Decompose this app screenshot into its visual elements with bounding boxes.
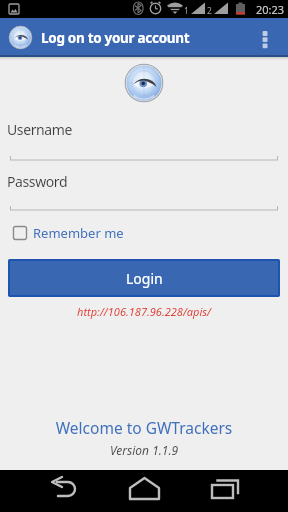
- button[interactable]: [0, 470, 96, 512]
- staticText: 1: [184, 5, 189, 17]
- staticText: Version 1.1.9: [0, 442, 288, 458]
- button[interactable]: [96, 470, 192, 512]
- button[interactable]: Login: [8, 259, 280, 297]
- staticText: Log on to your account: [41, 29, 190, 47]
- staticText: 20:23: [256, 2, 285, 17]
- staticText: Remember me: [33, 224, 124, 242]
- button[interactable]: Remember me: [13, 224, 124, 242]
- button[interactable]: [248, 18, 288, 57]
- button[interactable]: [192, 470, 288, 512]
- staticText: Welcome to GWTrackers: [0, 417, 288, 438]
- staticText: http://106.187.96.228/apis/: [0, 304, 288, 319]
- staticText: 2: [207, 5, 212, 17]
- staticText: Password: [7, 172, 68, 191]
- staticText: Login: [126, 269, 163, 288]
- staticText: Username: [7, 120, 72, 139]
